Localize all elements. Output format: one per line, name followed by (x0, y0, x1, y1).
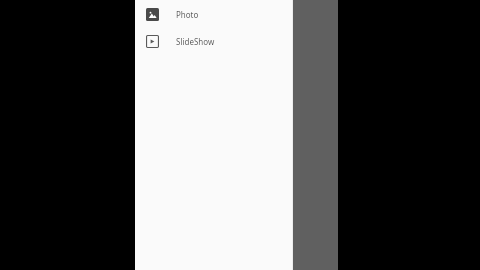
staticText: SlideShow (176, 36, 215, 47)
staticText: Photo (176, 9, 199, 20)
button[interactable]: Photo (135, 0, 293, 28)
button[interactable]: SlideShow (135, 28, 293, 54)
